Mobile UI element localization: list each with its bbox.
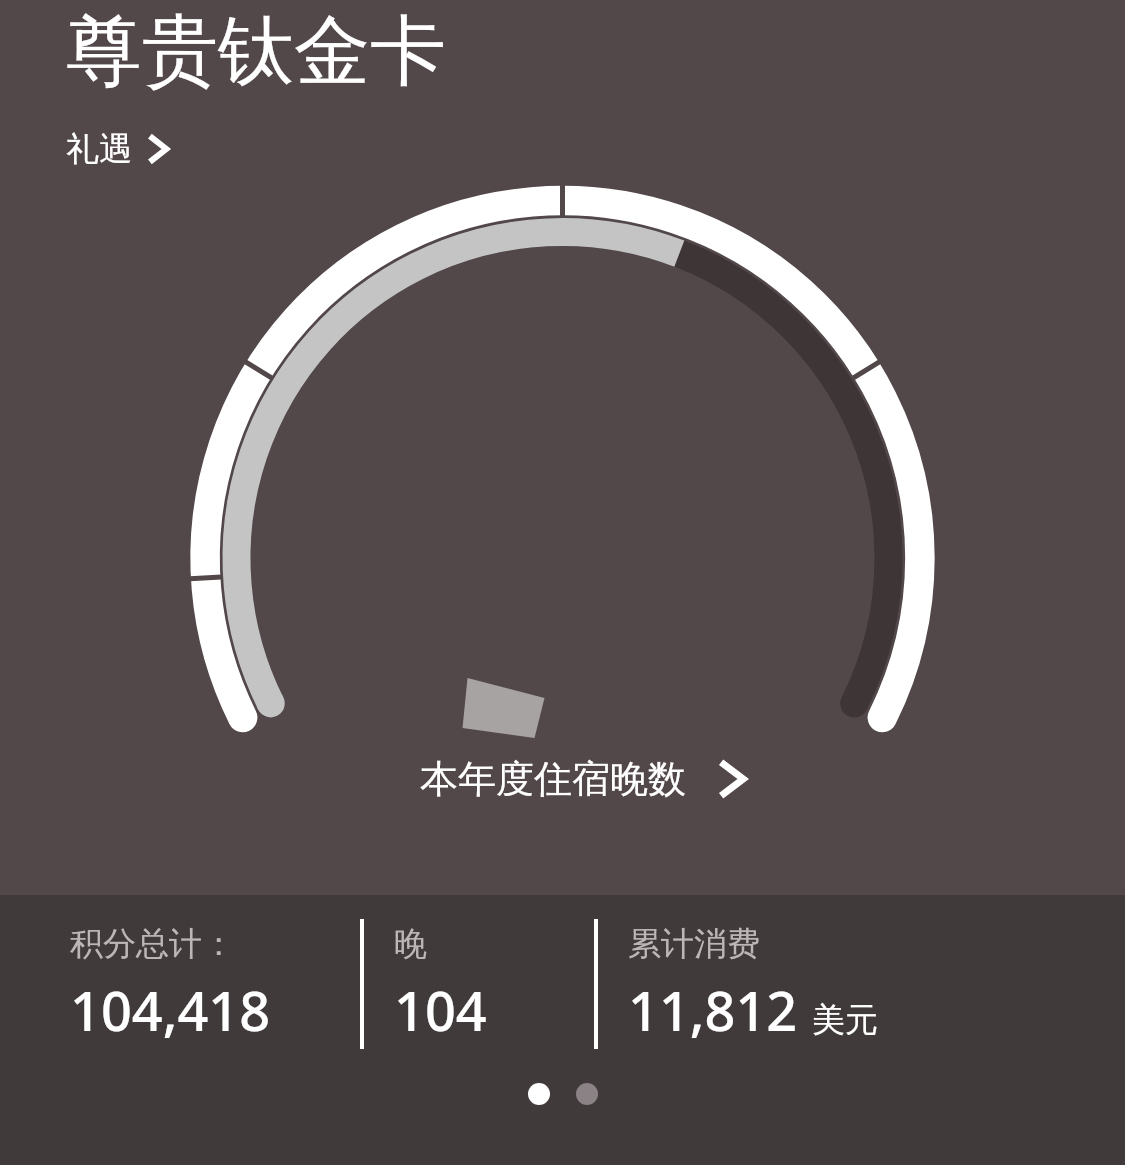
button[interactable]: 礼遇 bbox=[66, 128, 172, 170]
staticText: 11,812 bbox=[628, 973, 798, 1047]
staticText: 尊贵钛金卡 bbox=[66, 4, 446, 100]
staticText: 晚 bbox=[394, 923, 427, 965]
staticText: 本年度住宿晚数 bbox=[420, 755, 686, 803]
staticText: 累计消费 bbox=[628, 923, 760, 965]
staticText: 美元 bbox=[812, 999, 878, 1041]
button[interactable]: 本年度住宿晚数 bbox=[420, 755, 750, 803]
staticText: 积分总计： bbox=[70, 923, 235, 965]
staticText: 礼遇 bbox=[66, 128, 132, 170]
staticText: 104,418 bbox=[70, 973, 271, 1047]
staticText: 104 bbox=[394, 973, 487, 1047]
